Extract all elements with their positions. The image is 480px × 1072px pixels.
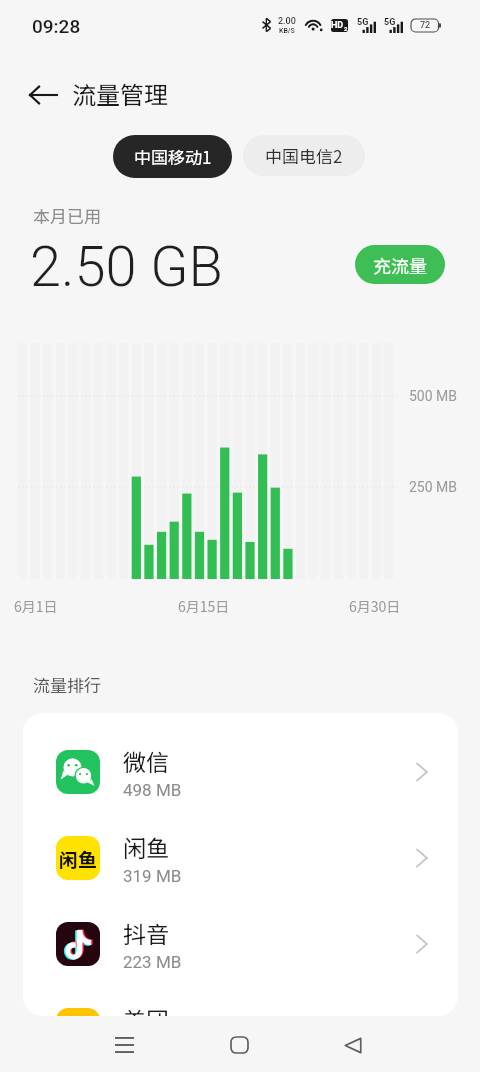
staticText: 498 MB xyxy=(123,780,182,800)
staticText: 500 MB xyxy=(409,388,458,404)
button[interactable]: Back xyxy=(328,1020,378,1070)
staticText: 闲鱼 xyxy=(123,830,169,863)
button[interactable]: 闲鱼 xyxy=(23,815,458,901)
staticText: 6月1日 xyxy=(14,596,58,616)
button[interactable]: Recent apps xyxy=(99,1020,149,1070)
button[interactable]: 中国电信2 xyxy=(243,135,365,176)
button[interactable]: 抖音 xyxy=(23,901,458,987)
staticText: 250 MB xyxy=(409,479,458,495)
button[interactable]: 微信 xyxy=(23,729,458,815)
staticText: 闲鱼 xyxy=(59,845,98,873)
staticText: 2.50 GB xyxy=(30,234,223,300)
staticText: 中国移动1 xyxy=(134,144,212,169)
staticText: 5G xyxy=(384,17,396,28)
staticText: 流量排行 xyxy=(33,672,101,697)
button[interactable]: Back xyxy=(20,72,66,118)
staticText: 本月已用 xyxy=(33,203,101,228)
staticText: 5G xyxy=(357,17,369,28)
staticText: 抖音 xyxy=(123,916,169,949)
button[interactable]: Home xyxy=(214,1020,264,1070)
staticText: 2 xyxy=(344,25,348,32)
staticText: 充流量 xyxy=(373,252,427,278)
staticText: 6月15日 xyxy=(178,596,230,616)
button[interactable]: 充流量 xyxy=(355,245,445,284)
staticText: 2.00 xyxy=(278,16,296,27)
staticText: 09:28 xyxy=(32,15,81,37)
staticText: 319 MB xyxy=(123,866,182,886)
staticText: 72 xyxy=(420,20,431,31)
button[interactable]: 中国移动1 xyxy=(113,135,232,178)
staticText: 6月30日 xyxy=(349,596,401,616)
button[interactable]: 美团 xyxy=(23,987,458,1016)
staticText: 美团 xyxy=(123,1002,169,1016)
staticText: KB/S xyxy=(279,27,295,35)
staticText: 流量管理 xyxy=(72,76,168,111)
staticText: 223 MB xyxy=(123,952,182,972)
staticText: 微信 xyxy=(123,744,169,777)
staticText: HD xyxy=(331,20,344,31)
staticText: 中国电信2 xyxy=(265,143,343,168)
